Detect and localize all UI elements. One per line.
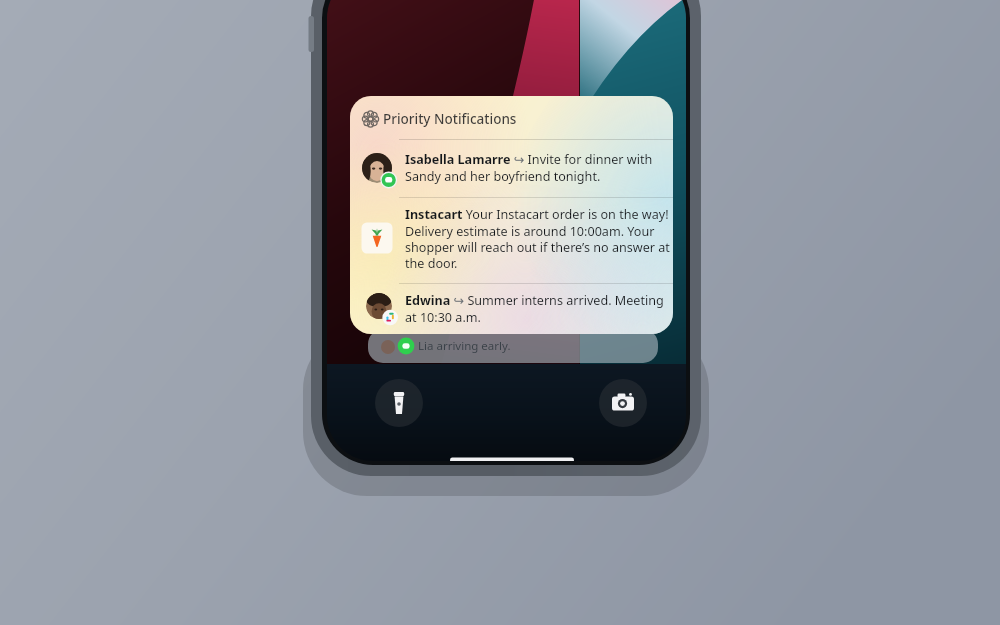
staticText: Instacart Your Instacart order is on the… <box>405 206 675 272</box>
button[interactable]: Camera <box>599 379 647 427</box>
staticText: Isabella Lamarre ↪ Invite for dinner wit… <box>405 151 673 184</box>
button[interactable]: Priority Notifications summary <box>350 96 673 334</box>
staticText: Lia arriving early. <box>418 338 511 354</box>
staticText: Edwina ↪ Summer interns arrived. Meeting… <box>405 292 673 325</box>
button[interactable]: Flashlight <box>375 379 423 427</box>
staticText: Priority Notifications <box>383 110 517 128</box>
